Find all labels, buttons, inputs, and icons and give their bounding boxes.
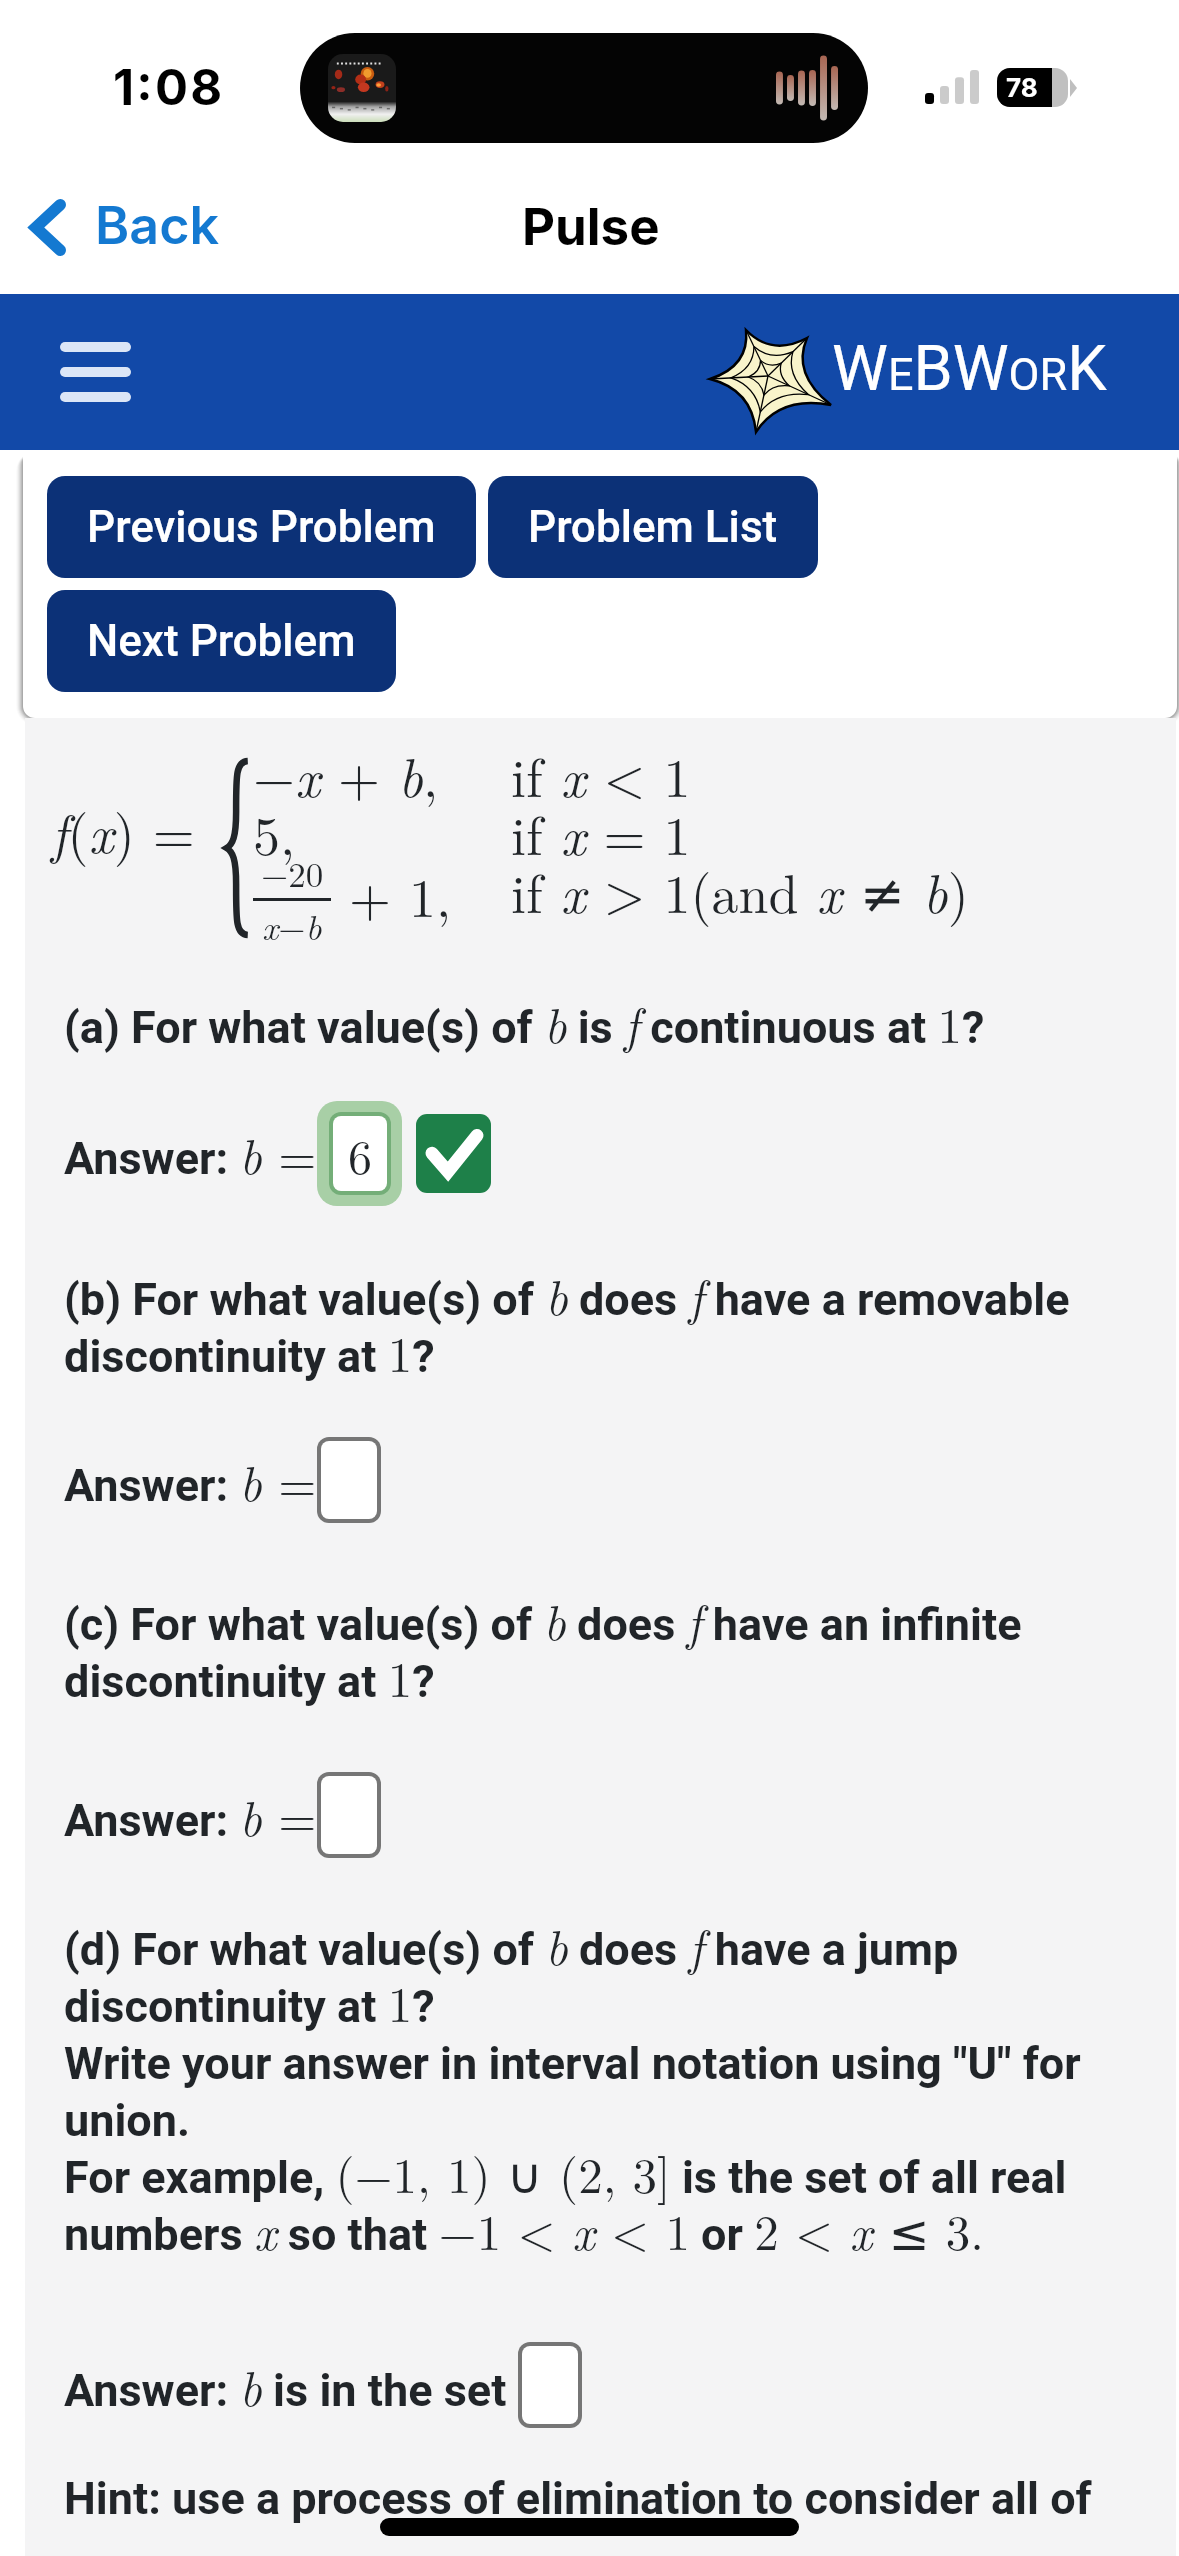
staticText: (c) For what value(s) of b does f have a…	[64, 1585, 1176, 1712]
button[interactable]: Answer field	[321, 1776, 377, 1854]
button[interactable]: Answer field	[321, 1441, 377, 1519]
staticText: −20	[261, 848, 324, 898]
staticText: Answer: b =	[64, 1781, 317, 1850]
button[interactable]: Next Problem	[47, 590, 396, 692]
staticText: (d) For what value(s) of b does f have a…	[64, 1910, 1176, 2265]
staticText: Next Problem	[87, 615, 356, 667]
staticText: if x = 1	[511, 794, 691, 871]
staticText: Back	[95, 194, 220, 257]
staticText: (a) For what value(s) of b is f continuo…	[64, 988, 985, 1057]
button[interactable]: Problem List	[488, 476, 818, 578]
staticText: WEBWORK	[832, 332, 1107, 406]
staticText: 1:08	[113, 58, 225, 117]
staticText: Previous Problem	[87, 501, 436, 553]
staticText: + 1,	[331, 856, 451, 933]
staticText: Hint: use a process of elimination to co…	[64, 2472, 1092, 2525]
staticText: Answer: b =	[64, 1119, 317, 1188]
staticText: (b) For what value(s) of b does f have a…	[64, 1260, 1176, 1387]
staticText: f(x) =	[51, 792, 213, 869]
staticText: 78	[1006, 72, 1038, 103]
staticText: if x < 1	[511, 736, 691, 813]
button[interactable]: Correct answer	[416, 1114, 491, 1193]
staticText: Answer: b =	[64, 1446, 317, 1515]
button[interactable]: Previous Problem	[47, 476, 476, 578]
staticText: −x + b,	[253, 736, 438, 813]
button[interactable]: Back	[17, 183, 234, 271]
staticText: Answer: b is in the set	[64, 2351, 518, 2420]
button[interactable]: Answer field	[522, 2346, 578, 2424]
staticText: Pulse	[522, 196, 660, 258]
staticText: if x > 1(and x ≠ b)	[511, 852, 969, 929]
staticText: x−b	[262, 901, 322, 946]
staticText: 6	[348, 1120, 373, 1188]
button[interactable]: Open navigation menu	[40, 332, 151, 412]
staticText: 5,	[253, 794, 296, 871]
staticText: Problem List	[528, 501, 778, 553]
